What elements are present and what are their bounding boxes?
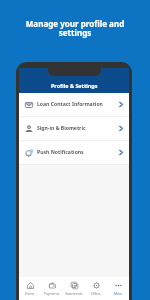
button[interactable]: Sign-in & Biometric bbox=[19, 117, 129, 140]
button[interactable]: Offers bbox=[85, 277, 107, 300]
button[interactable]: Push Notifications bbox=[19, 141, 129, 164]
staticText: More bbox=[114, 291, 123, 295]
staticText: Payments bbox=[44, 291, 60, 295]
button[interactable]: Loan Contact Information bbox=[19, 93, 129, 116]
button[interactable]: Home bbox=[19, 277, 41, 300]
button[interactable]: Statements bbox=[63, 277, 85, 300]
staticText: Home bbox=[25, 291, 35, 295]
staticText: Loan Contact Information bbox=[37, 101, 103, 108]
staticText: Profile & Settings bbox=[51, 82, 98, 89]
button[interactable]: Payments bbox=[41, 277, 63, 300]
button[interactable]: More bbox=[107, 277, 129, 300]
staticText: Offers bbox=[91, 291, 101, 295]
staticText: Sign-in & Biometric bbox=[37, 125, 86, 132]
staticText: Push Notifications bbox=[37, 149, 84, 156]
staticText: Statements bbox=[65, 291, 83, 295]
staticText: Manage your profile and settings bbox=[0, 18, 150, 38]
